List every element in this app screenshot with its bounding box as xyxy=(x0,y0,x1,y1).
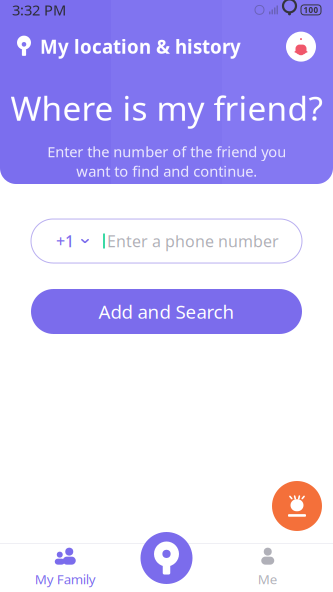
staticText: +1 xyxy=(56,230,74,252)
staticText: Enter a phone number xyxy=(107,230,279,252)
staticText: 100 xyxy=(303,5,318,15)
staticText: Add and Search xyxy=(98,299,234,324)
staticText: Where is my friend? xyxy=(10,86,322,130)
staticText: My location & history xyxy=(40,34,241,59)
button[interactable]: Map xyxy=(140,532,192,584)
button[interactable]: Me xyxy=(202,543,333,592)
button[interactable]: My Family xyxy=(0,543,130,592)
button[interactable]: Add and Search xyxy=(31,289,302,334)
button[interactable]: +1 xyxy=(31,219,302,263)
staticText: 3:32 PM xyxy=(12,0,66,20)
staticText: Me xyxy=(258,570,278,588)
button[interactable]: Emergency SOS xyxy=(272,481,322,531)
staticText: Enter the number of the friend you want … xyxy=(47,142,286,181)
button[interactable]: My location & history xyxy=(17,34,241,59)
button[interactable]: Notifications xyxy=(286,32,316,62)
staticText: My Family xyxy=(35,570,96,588)
